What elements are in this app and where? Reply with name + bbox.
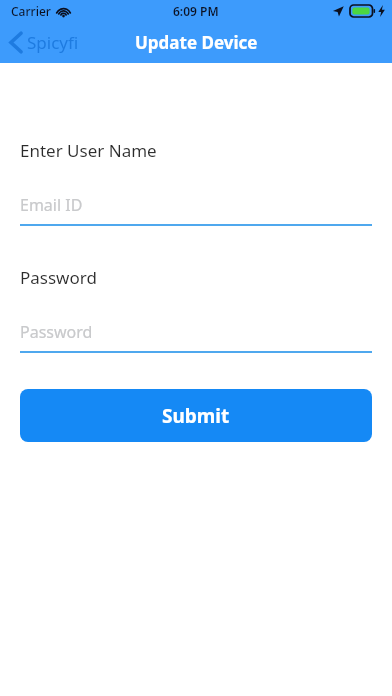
staticText: Submit <box>162 403 230 429</box>
button[interactable]: Email ID <box>20 193 372 226</box>
staticText: Update Device <box>135 31 258 54</box>
staticText: Enter User Name <box>20 139 157 162</box>
other: Location <box>332 5 344 17</box>
staticText: Password <box>20 321 93 343</box>
staticText: 6:09 PM <box>173 3 219 19</box>
button[interactable]: Submit <box>20 389 372 442</box>
other: Wi-Fi <box>56 6 71 17</box>
button[interactable]: Password <box>20 320 372 353</box>
staticText: Password <box>20 266 97 289</box>
staticText: Carrier <box>11 3 51 19</box>
staticText: Email ID <box>20 194 83 216</box>
button[interactable]: Spicyfi <box>0 27 89 58</box>
staticText: Spicyfi <box>27 31 79 54</box>
